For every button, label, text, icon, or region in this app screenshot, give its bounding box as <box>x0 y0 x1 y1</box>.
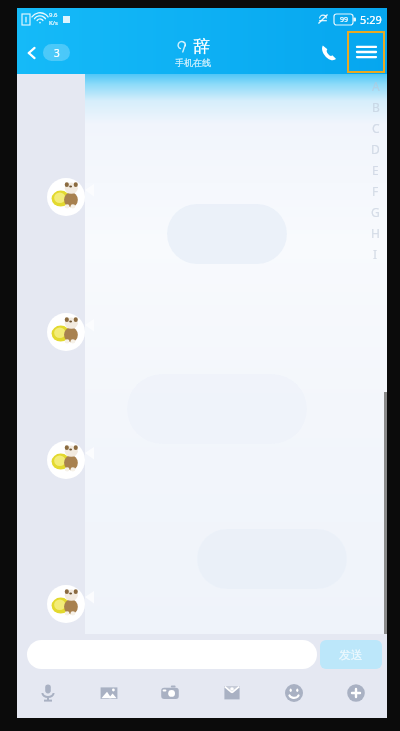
button[interactable]: Gallery <box>78 674 139 712</box>
staticText: 辞 <box>193 36 210 57</box>
button[interactable]: Voice <box>17 674 78 712</box>
button[interactable]: Message input <box>27 640 317 669</box>
staticText: D <box>371 141 380 157</box>
button[interactable]: Alphabet index <box>371 75 380 264</box>
staticText: I <box>373 246 378 262</box>
button[interactable]: 发送 <box>320 640 382 669</box>
button[interactable]: More <box>325 674 387 712</box>
staticText: 99 <box>340 15 349 25</box>
staticText: A <box>372 78 380 94</box>
button[interactable]: Back, 3 unread <box>17 39 76 66</box>
staticText: F <box>372 183 379 199</box>
staticText: 9.6 <box>49 11 58 19</box>
staticText: 3 <box>54 46 60 60</box>
button[interactable]: Contact avatar <box>47 585 85 623</box>
staticText: 发送 <box>339 647 363 662</box>
button[interactable]: Contact avatar <box>47 313 85 351</box>
button[interactable]: Contact avatar <box>47 178 85 216</box>
staticText: 5:29 <box>360 12 382 27</box>
button[interactable]: Voice call <box>310 34 347 71</box>
button[interactable]: Contact avatar <box>47 441 85 479</box>
staticText: 手机在线 <box>175 57 211 68</box>
staticText: C <box>372 120 380 136</box>
button[interactable]: Stickers <box>263 674 325 712</box>
button[interactable]: Mail <box>201 674 263 712</box>
staticText: H <box>371 225 380 241</box>
staticText: E <box>372 162 379 178</box>
staticText: G <box>371 204 380 220</box>
button[interactable]: Camera <box>139 674 201 712</box>
staticText: B <box>372 99 380 115</box>
button[interactable]: Menu <box>347 31 385 73</box>
staticText: K/s <box>49 19 58 27</box>
